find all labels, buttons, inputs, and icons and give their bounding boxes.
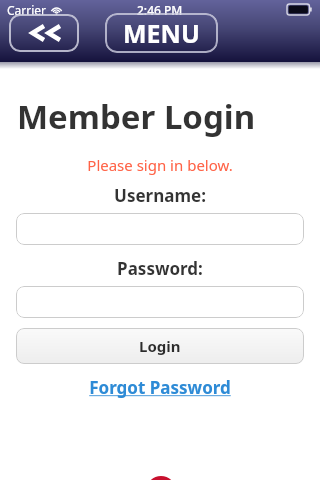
button[interactable]: Back xyxy=(9,14,79,52)
staticText: Login xyxy=(139,336,181,356)
staticText: Carrier xyxy=(7,2,47,18)
button[interactable]: Login xyxy=(16,328,304,364)
staticText: Please sign in below. xyxy=(0,155,320,175)
staticText: Username: xyxy=(0,184,320,207)
button[interactable]: MENU xyxy=(105,13,218,53)
button[interactable]: Forgot Password xyxy=(0,374,320,401)
staticText: 2:46 PM xyxy=(137,2,183,18)
button[interactable]: Text field xyxy=(16,286,304,318)
button[interactable]: Text field xyxy=(16,213,304,245)
staticText: Password: xyxy=(0,257,320,280)
staticText: MENU xyxy=(123,16,200,50)
staticText: Member Login xyxy=(17,94,320,139)
